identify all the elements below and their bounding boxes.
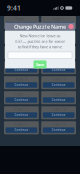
staticText: New Name (or leave as	[19, 33, 60, 38]
staticText: Continue	[14, 23, 28, 26]
staticText: Puzzle 1	[15, 17, 27, 21]
staticText: Continue	[52, 83, 66, 87]
staticText: Puzzle 3	[15, 32, 27, 36]
staticText: Continue	[52, 98, 66, 102]
button[interactable]: Continue	[5, 37, 37, 43]
staticText: Continue	[52, 23, 66, 26]
button[interactable]: Continue	[43, 22, 75, 27]
button[interactable]: Continue	[43, 52, 75, 58]
staticText: Puzzle 6	[53, 48, 65, 51]
button[interactable]: Continue	[43, 37, 75, 43]
button[interactable]: Continue	[5, 52, 37, 58]
button[interactable]: Continue	[43, 97, 75, 103]
staticText: Continue	[52, 113, 66, 117]
staticText: Continue	[14, 68, 28, 72]
staticText: Continue	[14, 113, 28, 117]
staticText: Continue	[52, 128, 66, 132]
staticText: Save	[36, 62, 44, 67]
staticText: Change Puzzle Name	[14, 23, 66, 30]
button[interactable]: Close	[67, 23, 75, 31]
staticText: Continue	[52, 68, 66, 72]
button[interactable]: Continue	[43, 82, 75, 88]
button[interactable]: Continue	[5, 112, 37, 118]
button[interactable]: Continue	[5, 82, 37, 88]
staticText: Continue	[14, 38, 28, 42]
staticText: Puzzle 4	[53, 32, 65, 36]
button[interactable]: Continue	[43, 127, 75, 133]
button[interactable]: Continue	[43, 112, 75, 118]
button[interactable]: Continue	[43, 67, 75, 73]
staticText: 9:41	[7, 4, 21, 12]
button[interactable]: Save	[33, 60, 46, 68]
staticText: Continue	[14, 98, 28, 102]
button[interactable]: Continue	[5, 67, 37, 73]
staticText: Continue	[14, 128, 28, 132]
button[interactable]: Continue	[5, 97, 37, 103]
staticText: it is) — puzzles are far easier	[14, 39, 65, 44]
button[interactable]: Continue	[5, 127, 37, 133]
button[interactable]: Continue	[5, 22, 37, 27]
staticText: to find if they have a name	[18, 44, 62, 49]
staticText: Puzzle 5	[15, 48, 27, 51]
staticText: Continue	[14, 83, 28, 87]
staticText: Continue	[52, 38, 66, 42]
